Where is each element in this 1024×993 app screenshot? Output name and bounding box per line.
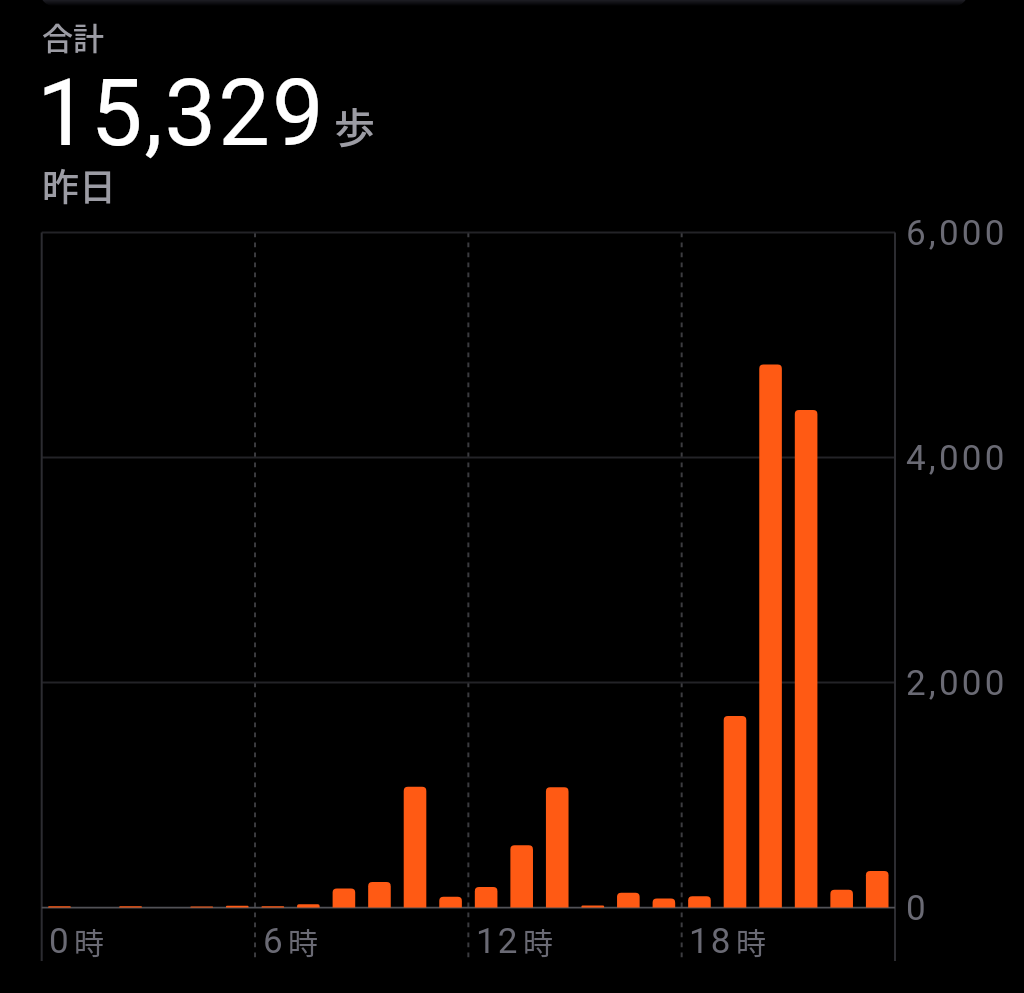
staticText: 時 (74, 919, 104, 962)
staticText: 12 (476, 921, 520, 962)
button[interactable]: 15,329 (37, 60, 326, 168)
staticText: 昨日 (42, 158, 116, 212)
staticText: 0 (49, 921, 71, 962)
staticText: 歩 (334, 95, 375, 154)
staticText: 6 (263, 921, 285, 962)
button[interactable]: Hourly step chart (41, 232, 895, 908)
staticText: 2,000 (906, 663, 1008, 704)
button[interactable]: 昨日 (42, 158, 116, 212)
button[interactable]: 合計 (42, 14, 104, 59)
staticText: 18 (689, 921, 733, 962)
staticText: 時 (736, 919, 766, 962)
staticText: 時 (288, 919, 318, 962)
staticText: 15,329 (37, 60, 326, 168)
staticText: 時 (523, 919, 553, 962)
staticText: 合計 (42, 14, 104, 59)
staticText: 0 (906, 888, 929, 929)
staticText: 4,000 (906, 438, 1008, 479)
staticText: 6,000 (906, 213, 1008, 254)
